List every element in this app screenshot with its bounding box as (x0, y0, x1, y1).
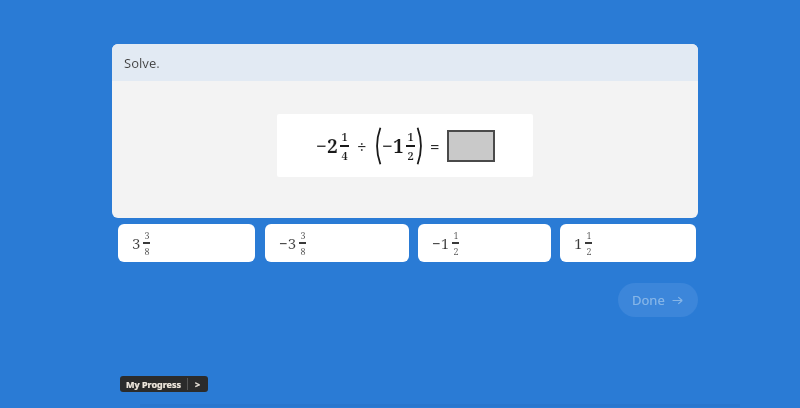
staticText: 8 (144, 245, 150, 257)
staticText: ÷ (357, 135, 367, 158)
staticText: 1 (586, 229, 592, 241)
staticText: Solve. (124, 54, 160, 72)
staticText: −1 (382, 133, 404, 159)
button[interactable]: My Progress (120, 376, 208, 392)
staticText: 2 (453, 245, 459, 257)
staticText: −2 (316, 133, 338, 159)
staticText: 1 (407, 129, 414, 144)
staticText: 4 (341, 148, 348, 163)
button[interactable]: −1 (418, 224, 551, 262)
staticText: 3 (144, 229, 150, 241)
staticText: 1 (574, 233, 583, 253)
staticText: My Progress (126, 378, 181, 390)
staticText: −3 (279, 233, 297, 253)
staticText: 3 (132, 233, 141, 253)
staticText: 2 (407, 148, 414, 163)
button[interactable]: Done (618, 283, 698, 317)
staticText: > (195, 378, 201, 390)
staticText: Done (632, 291, 665, 309)
staticText: 1 (341, 129, 348, 144)
button[interactable]: 3 (118, 224, 255, 262)
staticText: = (430, 135, 440, 158)
button[interactable]: −3 (265, 224, 409, 262)
staticText: 8 (300, 245, 306, 257)
staticText: 2 (586, 245, 592, 257)
staticText: 1 (453, 229, 459, 241)
staticText: −1 (432, 233, 450, 253)
staticText: 3 (300, 229, 306, 241)
button[interactable]: 1 (560, 224, 696, 262)
